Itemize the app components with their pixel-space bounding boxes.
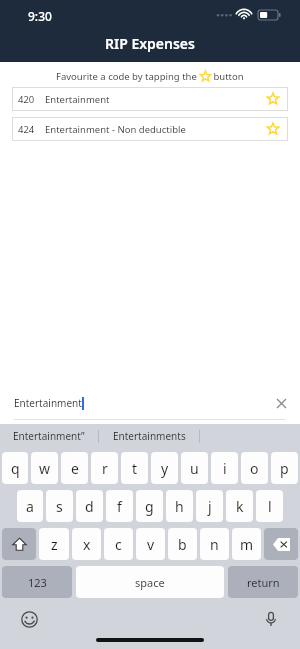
button[interactable]: Backspace	[264, 528, 298, 560]
staticText: u	[190, 459, 199, 478]
button[interactable]: 420	[12, 87, 288, 111]
staticText: 424	[18, 123, 35, 136]
staticText: Entertainment	[14, 396, 82, 410]
staticText: n	[210, 535, 219, 554]
staticText: l	[268, 497, 272, 516]
button[interactable]: k	[226, 490, 253, 522]
button[interactable]: b	[168, 528, 197, 560]
button[interactable]: return	[228, 566, 298, 598]
staticText: Entertainment”	[13, 429, 85, 443]
button[interactable]: d	[76, 490, 103, 522]
button[interactable]: s	[46, 490, 73, 522]
button[interactable]: g	[136, 490, 163, 522]
button[interactable]: h	[166, 490, 193, 522]
staticText: a	[26, 497, 34, 516]
button[interactable]: Shift	[2, 528, 36, 560]
button[interactable]: w	[31, 452, 58, 484]
staticText: Favourite a code by tapping the	[56, 70, 200, 83]
button[interactable]: space	[76, 566, 224, 598]
staticText: w	[39, 459, 51, 478]
staticText: f	[117, 497, 122, 516]
staticText: s	[56, 497, 63, 516]
staticText: q	[11, 459, 20, 478]
button[interactable]: Favourite 420	[264, 90, 282, 108]
button[interactable]: f	[106, 490, 133, 522]
staticText: return	[247, 575, 280, 590]
button[interactable]: Emoji keyboard	[18, 608, 40, 630]
staticText: r	[102, 459, 108, 478]
staticText: space	[135, 575, 165, 590]
button[interactable]: i	[211, 452, 238, 484]
button[interactable]: j	[196, 490, 223, 522]
staticText: 9:30	[28, 8, 52, 24]
button[interactable]: Clear text	[272, 394, 290, 412]
button[interactable]: c	[104, 528, 133, 560]
button[interactable]: Favourite 424	[264, 120, 282, 138]
staticText: 123	[28, 575, 47, 590]
button[interactable]: Dictation	[260, 608, 282, 630]
button[interactable]: Entertainment	[0, 387, 300, 419]
staticText: button	[211, 70, 244, 83]
button[interactable]: x	[72, 528, 101, 560]
button[interactable]: l	[256, 490, 283, 522]
staticText: RIP Expenses	[105, 34, 195, 53]
staticText: e	[71, 459, 79, 478]
staticText: o	[250, 459, 259, 478]
button[interactable]: m	[232, 528, 261, 560]
button[interactable]: t	[121, 452, 148, 484]
button[interactable]: z	[39, 528, 69, 560]
button[interactable]: Entertainments	[99, 424, 199, 448]
staticText: b	[178, 535, 187, 554]
staticText: y	[161, 459, 169, 478]
button[interactable]: a	[17, 490, 43, 522]
button[interactable]: o	[241, 452, 268, 484]
staticText: i	[223, 459, 227, 478]
staticText: Entertainments	[113, 429, 186, 443]
staticText: v	[147, 535, 155, 554]
staticText: Entertainment	[45, 93, 110, 106]
button[interactable]: r	[91, 452, 118, 484]
button[interactable]: e	[61, 452, 88, 484]
button[interactable]: 123	[2, 566, 72, 598]
staticText: t	[132, 459, 138, 478]
staticText: m	[240, 535, 254, 554]
staticText: k	[236, 497, 244, 516]
button[interactable]: y	[151, 452, 178, 484]
staticText: c	[115, 535, 122, 554]
staticText: p	[280, 459, 289, 478]
staticText: x	[83, 535, 91, 554]
button[interactable]: n	[200, 528, 229, 560]
button[interactable]: 424	[12, 117, 288, 141]
staticText: g	[145, 497, 154, 516]
staticText: d	[85, 497, 94, 516]
staticText: Entertainment - Non deductible	[45, 123, 186, 136]
button[interactable]: u	[181, 452, 208, 484]
button[interactable]: p	[271, 452, 298, 484]
staticText: h	[175, 497, 184, 516]
button[interactable]: Entertainment”	[0, 424, 98, 448]
button[interactable]: v	[136, 528, 165, 560]
staticText: j	[208, 497, 212, 516]
button[interactable]: q	[2, 452, 28, 484]
staticText: 420	[18, 93, 35, 106]
staticText: z	[51, 535, 58, 554]
